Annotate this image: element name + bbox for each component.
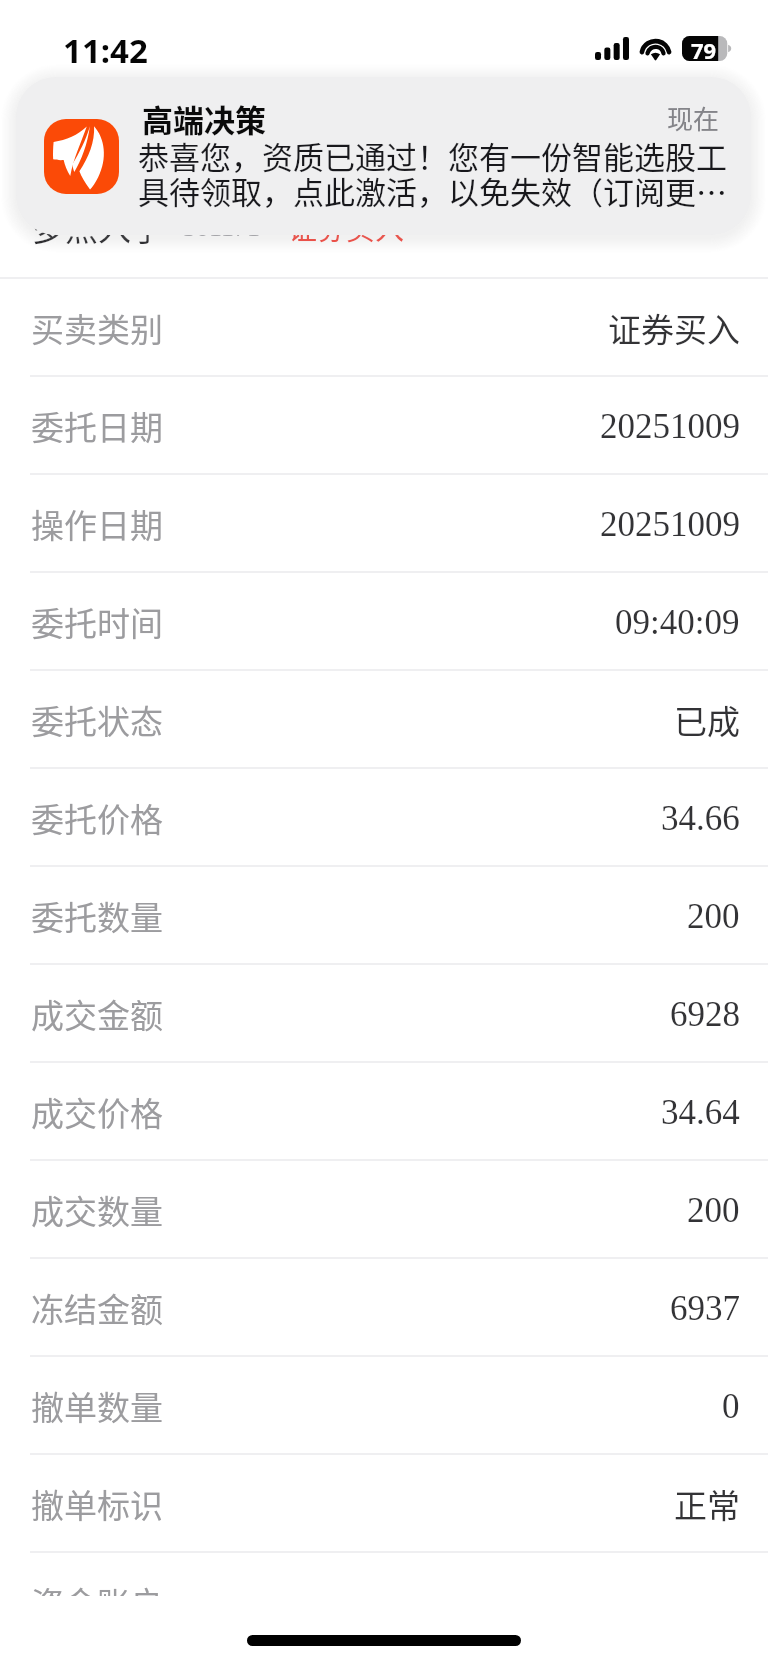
staticText: 79 [691, 35, 717, 60]
staticText: 成交价格 [31, 1088, 163, 1136]
staticText: 301171 [183, 213, 261, 242]
button[interactable]: 成交价格 [0, 1063, 768, 1161]
button[interactable]: 成交数量 [0, 1161, 768, 1259]
button[interactable]: 成交金额 [0, 965, 768, 1063]
button[interactable]: 操作日期 [0, 475, 768, 573]
staticText: 委托价格 [31, 794, 163, 842]
staticText: 买卖类别 [31, 304, 163, 352]
button[interactable]: 委托状态 [0, 671, 768, 769]
staticText: 已成 [674, 696, 740, 744]
button[interactable]: 多点入手 [0, 181, 768, 279]
button[interactable]: 高端决策 [16, 77, 751, 235]
staticText: 证券买入 [608, 304, 740, 352]
button[interactable]: 委托日期 [0, 377, 768, 475]
staticText: 11:42 [63, 28, 148, 73]
staticText: 20251009 [600, 505, 740, 544]
staticText: 高端决策 [142, 96, 266, 141]
staticText: 委托数量 [31, 892, 163, 940]
staticText: 恭喜您，资质已通过！您有一份智能选股工具待领取，点此激活，以免失效（订阅更… [138, 133, 730, 213]
button[interactable]: 委托时间 [0, 573, 768, 671]
button[interactable]: 买卖类别 [0, 279, 768, 377]
staticText: 操作日期 [31, 500, 163, 548]
staticText: 0 [722, 1387, 740, 1426]
staticText: 委托日期 [31, 402, 163, 450]
staticText: 200 [687, 897, 740, 936]
staticText: 冻结金额 [31, 1284, 163, 1332]
button[interactable]: 撤单标识 [0, 1455, 768, 1553]
staticText: 34.66 [661, 799, 740, 838]
button[interactable]: 委托价格 [0, 769, 768, 867]
staticText: 成交金额 [31, 990, 163, 1038]
staticText: 6928 [670, 995, 740, 1034]
button[interactable]: 资金账户 [0, 1553, 768, 1651]
staticText: 成交数量 [31, 1186, 163, 1234]
staticText: 20251009 [600, 407, 740, 446]
button[interactable]: 委托数量 [0, 867, 768, 965]
staticText: 34.64 [661, 1093, 740, 1132]
button[interactable]: 撤单数量 [0, 1357, 768, 1455]
staticText: 200 [687, 1191, 740, 1230]
staticText: 委托状态 [31, 696, 163, 744]
staticText: 资金账户 [31, 1578, 163, 1626]
staticText: 多点入手 [32, 203, 164, 251]
staticText: 正常 [674, 1480, 740, 1528]
staticText: 撤单数量 [31, 1382, 163, 1430]
staticText: 6937 [670, 1289, 740, 1328]
button[interactable]: 冻结金额 [0, 1259, 768, 1357]
staticText: 委托时间 [31, 598, 163, 646]
staticText: 09:40:09 [615, 603, 740, 642]
staticText: 证券买入 [288, 206, 405, 248]
staticText: 撤单标识 [31, 1480, 163, 1528]
staticText: 现在 [667, 99, 720, 137]
